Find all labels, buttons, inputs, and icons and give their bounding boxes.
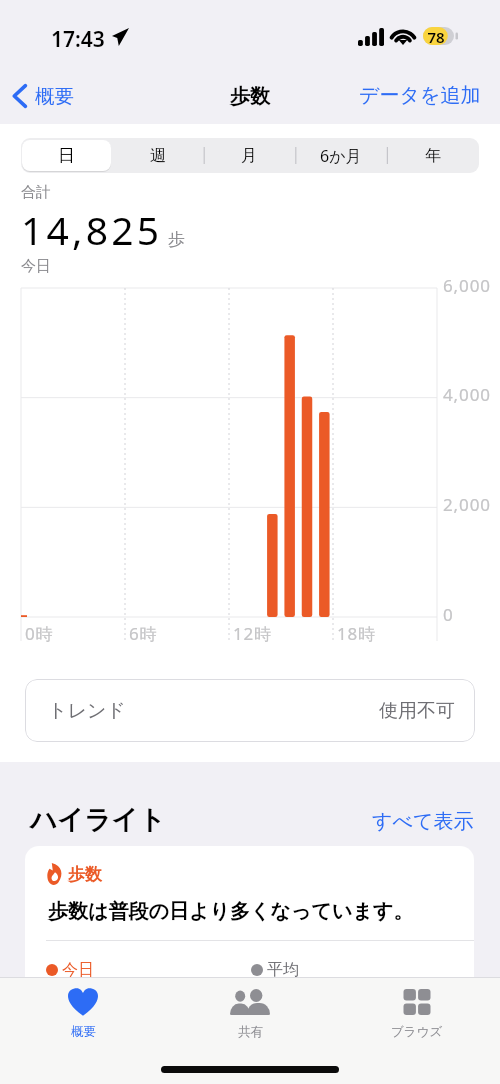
button[interactable]: すべて表示 [372, 809, 474, 834]
staticText: 概要 [35, 84, 74, 109]
staticText: 歩数 [0, 84, 500, 109]
staticText: トレンド [48, 699, 126, 723]
staticText: ハイライト [30, 803, 166, 836]
staticText: 今日 [21, 257, 51, 276]
staticText: ブラウズ [391, 1024, 443, 1040]
staticText: 12時 [233, 622, 272, 645]
staticText: 概要 [71, 1024, 96, 1040]
staticText: 歩数 [68, 864, 102, 885]
staticText: 4,000 [443, 383, 491, 406]
staticText: 2,000 [443, 493, 491, 516]
staticText: 78 [426, 27, 446, 47]
staticText: 6,000 [443, 274, 491, 297]
staticText: 今日 [62, 960, 94, 980]
button[interactable]: 概要 [7, 81, 79, 111]
button[interactable]: 共有 [166, 977, 333, 1045]
staticText: 月 [241, 146, 257, 166]
button[interactable]: 月 [203, 138, 295, 173]
staticText: 14,825 [21, 203, 163, 256]
button[interactable]: 6か月 [295, 138, 387, 173]
staticText: 合計 [21, 183, 51, 202]
staticText: 0時 [25, 622, 54, 645]
staticText: 歩数は普段の日より多くなっています。 [48, 899, 414, 924]
staticText: 週 [150, 146, 166, 166]
button[interactable]: 年 [387, 138, 479, 173]
button[interactable]: データを追加 [359, 83, 481, 108]
staticText: 6か月 [320, 145, 362, 167]
staticText: 17:43 [51, 25, 105, 54]
staticText: 平均 [267, 960, 299, 980]
staticText: 年 [425, 146, 441, 166]
button[interactable]: ブラウズ [333, 977, 500, 1045]
button[interactable]: 週 [112, 138, 203, 173]
button[interactable]: 歩数 [25, 846, 474, 1006]
staticText: 共有 [238, 1024, 263, 1040]
button[interactable]: 日 [21, 138, 112, 173]
staticText: 歩 [168, 229, 185, 250]
staticText: 6時 [129, 622, 158, 645]
staticText: 使用不可 [379, 699, 455, 723]
staticText: 18時 [337, 622, 376, 645]
staticText: 0 [443, 603, 454, 626]
button[interactable]: 概要 [0, 977, 166, 1045]
button[interactable]: トレンド [25, 679, 475, 742]
staticText: 日 [58, 145, 75, 166]
